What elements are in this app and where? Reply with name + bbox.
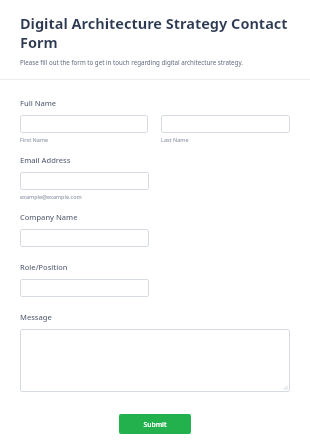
staticText: Full Name	[20, 98, 57, 108]
button[interactable]	[20, 229, 149, 247]
staticText: example@example.com	[20, 193, 82, 200]
staticText: Submit	[143, 420, 167, 429]
staticText: Company Name	[20, 212, 78, 222]
staticText: Please fill out the form to get in touch…	[20, 58, 243, 66]
staticText: Digital Architecture Strategy Contact Fo…	[20, 13, 290, 52]
button[interactable]	[20, 279, 149, 297]
button[interactable]	[161, 115, 290, 133]
button[interactable]: Submit	[119, 414, 191, 434]
button[interactable]	[20, 172, 149, 190]
staticText: Last Name	[161, 136, 189, 143]
button[interactable]	[20, 115, 148, 133]
staticText: Role/Position	[20, 262, 68, 272]
staticText: Message	[20, 312, 52, 322]
button[interactable]	[20, 329, 290, 392]
staticText: Email Address	[20, 155, 71, 165]
staticText: First Name	[20, 136, 49, 143]
